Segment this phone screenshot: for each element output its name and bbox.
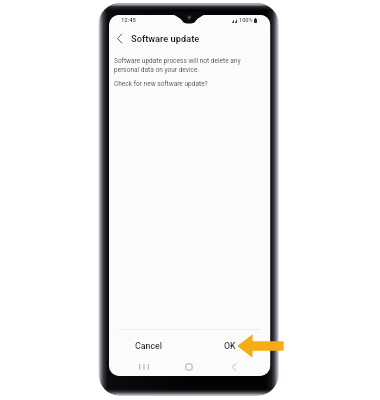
- staticText: Cancel: [135, 341, 162, 351]
- button[interactable]: Back: [110, 29, 128, 47]
- button[interactable]: OK: [194, 335, 266, 357]
- staticText: Check for new software update?: [114, 80, 208, 88]
- staticText: Software update: [131, 33, 200, 44]
- staticText: 100%: [239, 17, 253, 24]
- button[interactable]: Home: [179, 357, 199, 376]
- button[interactable]: Back: [224, 357, 244, 376]
- button[interactable]: Cancel: [112, 335, 184, 357]
- staticText: OK: [224, 341, 236, 351]
- button[interactable]: Recents: [134, 357, 154, 376]
- staticText: 12:45: [121, 17, 136, 24]
- staticText: Software update process will not delete …: [114, 57, 241, 73]
